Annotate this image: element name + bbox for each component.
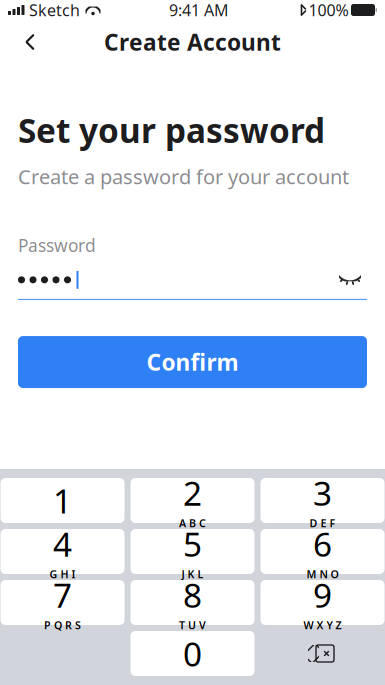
staticText: Create Account	[104, 27, 281, 57]
staticText: P Q R S	[44, 618, 81, 632]
staticText: 3	[313, 471, 332, 515]
staticText: 4	[53, 522, 72, 566]
staticText: T U V	[179, 618, 206, 632]
staticText: 1	[53, 478, 72, 523]
staticText: M N O	[306, 567, 338, 581]
button[interactable]: 8	[130, 580, 254, 625]
staticText: W X Y Z	[303, 618, 341, 632]
staticText: Sketch	[29, 0, 80, 21]
staticText: 0	[183, 631, 202, 676]
button[interactable]: Back	[8, 20, 52, 64]
staticText: Create a password for your account	[18, 163, 349, 190]
button[interactable]: Delete	[260, 631, 384, 676]
staticText: Confirm	[146, 347, 238, 377]
staticText: J K L	[181, 567, 203, 581]
staticText: G H I	[49, 567, 75, 581]
staticText: Set your password	[18, 108, 325, 152]
staticText: D E F	[309, 516, 335, 530]
button[interactable]: 9	[260, 580, 384, 625]
staticText: 100%	[308, 0, 348, 21]
staticText: A B C	[179, 516, 206, 530]
button[interactable]: 1	[0, 478, 124, 523]
button[interactable]: 0	[130, 631, 254, 676]
button[interactable]: 4	[0, 529, 124, 574]
staticText: 9	[313, 573, 332, 617]
button[interactable]: 6	[260, 529, 384, 574]
button[interactable]: Confirm	[18, 336, 367, 388]
button[interactable]: 5	[130, 529, 254, 574]
staticText: Password	[18, 234, 96, 257]
button[interactable]: 7	[0, 580, 124, 625]
staticText: 6	[313, 522, 332, 566]
staticText: 2	[183, 471, 202, 515]
button[interactable]: Show password	[333, 267, 367, 293]
button[interactable]: 3	[260, 478, 384, 523]
staticText: 7	[53, 573, 72, 617]
button[interactable]: 2	[130, 478, 254, 523]
staticText: 9:41 AM	[169, 0, 229, 21]
staticText: 5	[183, 522, 202, 566]
staticText: 8	[183, 573, 202, 617]
